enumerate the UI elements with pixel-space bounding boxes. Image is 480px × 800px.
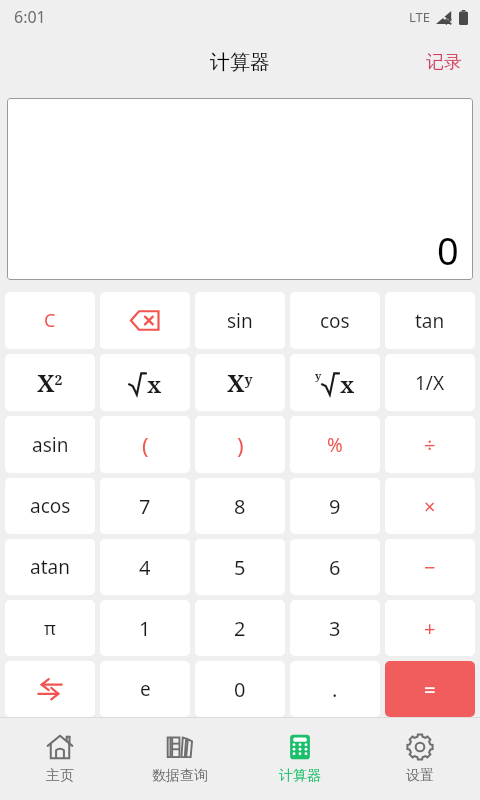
staticText: 1 xyxy=(139,615,151,642)
button[interactable]: e xyxy=(100,661,190,717)
staticText: = xyxy=(424,676,436,703)
staticText: X2 xyxy=(37,366,63,399)
staticText: ) xyxy=(237,430,244,460)
button[interactable]: × xyxy=(385,478,475,534)
button[interactable]: ÷ xyxy=(385,416,475,473)
button[interactable]: Xy xyxy=(195,354,285,411)
staticText: 9 xyxy=(329,493,341,520)
staticText: sin xyxy=(227,308,253,334)
button[interactable]: sin xyxy=(195,292,285,349)
button[interactable]: 9 xyxy=(290,478,380,534)
staticText: x xyxy=(340,369,355,399)
button[interactable]: ( xyxy=(100,416,190,473)
staticText: . xyxy=(332,676,338,703)
staticText: 计算器 xyxy=(210,50,270,75)
staticText: π xyxy=(44,616,56,641)
staticText: 8 xyxy=(234,493,246,520)
staticText: 1/X xyxy=(415,370,445,396)
button[interactable]: + xyxy=(385,600,475,656)
button[interactable]: 计算器 xyxy=(240,718,360,800)
staticText: 数据查询 xyxy=(152,767,208,785)
staticText: cos xyxy=(320,308,350,334)
staticText: × xyxy=(424,493,436,520)
staticText: 主页 xyxy=(46,767,74,785)
button[interactable]: 1/X xyxy=(385,354,475,411)
staticText: Xy xyxy=(227,366,253,399)
staticText: 记录 xyxy=(426,51,462,74)
button[interactable]: 4 xyxy=(100,539,190,595)
button[interactable]: 6 xyxy=(290,539,380,595)
button[interactable]: 数据查询 xyxy=(120,718,240,800)
button[interactable]: square root xyxy=(100,354,190,411)
button[interactable]: 8 xyxy=(195,478,285,534)
button[interactable]: 7 xyxy=(100,478,190,534)
staticText: 0 xyxy=(234,676,246,703)
button[interactable]: 设置 xyxy=(360,718,480,800)
staticText: y xyxy=(315,368,322,383)
button[interactable]: Swap xyxy=(5,661,95,717)
button[interactable]: 主页 xyxy=(0,718,120,800)
button[interactable]: 5 xyxy=(195,539,285,595)
button[interactable]: 记录 xyxy=(408,41,480,84)
button[interactable]: ) xyxy=(195,416,285,473)
staticText: 6 xyxy=(329,554,341,581)
staticText: asin xyxy=(32,432,69,458)
staticText: acos xyxy=(30,493,71,519)
staticText: + xyxy=(424,615,436,642)
staticText: ( xyxy=(142,430,149,460)
staticText: 0 xyxy=(437,224,459,276)
button[interactable]: π xyxy=(5,600,95,656)
button[interactable]: X2 xyxy=(5,354,95,411)
staticText: 设置 xyxy=(406,767,434,785)
button[interactable]: acos xyxy=(5,478,95,534)
button[interactable]: % xyxy=(290,416,380,473)
button[interactable]: asin xyxy=(5,416,95,473)
staticText: e xyxy=(140,676,151,702)
button[interactable]: atan xyxy=(5,539,95,595)
staticText: ÷ xyxy=(424,431,436,458)
button[interactable]: 0 xyxy=(195,661,285,717)
staticText: x xyxy=(147,369,162,399)
button[interactable]: 3 xyxy=(290,600,380,656)
staticText: 计算器 xyxy=(279,767,321,785)
staticText: 2 xyxy=(234,615,246,642)
staticText: − xyxy=(424,554,436,581)
button[interactable]: Backspace xyxy=(100,292,190,349)
staticText: 5 xyxy=(234,554,246,581)
button[interactable]: 1 xyxy=(100,600,190,656)
staticText: 3 xyxy=(329,615,341,642)
button[interactable]: − xyxy=(385,539,475,595)
button[interactable]: 2 xyxy=(195,600,285,656)
staticText: tan xyxy=(415,308,445,334)
staticText: % xyxy=(327,432,343,458)
button[interactable]: cos xyxy=(290,292,380,349)
staticText: 6:01 xyxy=(14,6,46,28)
button[interactable]: tan xyxy=(385,292,475,349)
button[interactable]: nth root xyxy=(290,354,380,411)
staticText: 7 xyxy=(139,493,151,520)
button[interactable]: C xyxy=(5,292,95,349)
staticText: C xyxy=(44,308,56,333)
button[interactable]: = xyxy=(385,661,475,717)
button[interactable]: . xyxy=(290,661,380,717)
staticText: LTE xyxy=(409,8,431,26)
staticText: 4 xyxy=(139,554,151,581)
staticText: atan xyxy=(30,554,70,580)
